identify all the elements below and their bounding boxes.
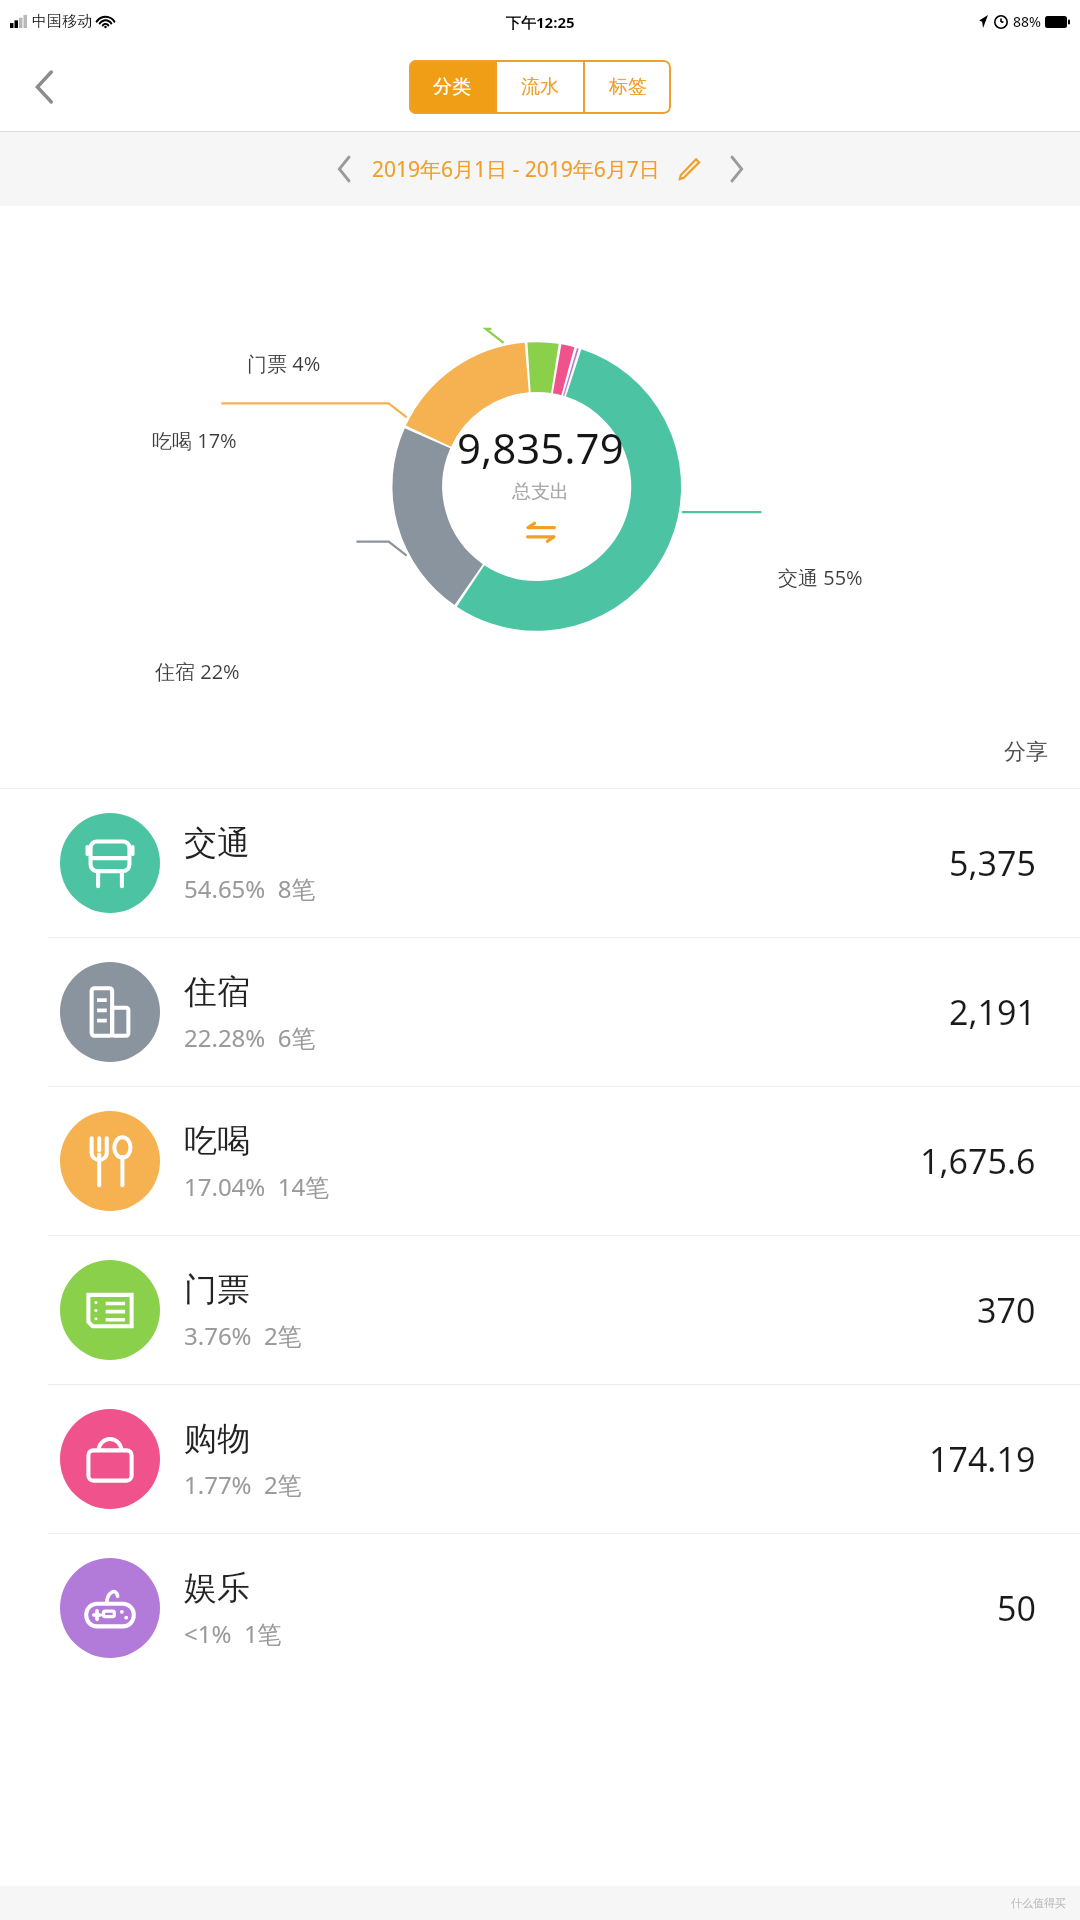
staticText: 住宿 22% xyxy=(155,658,240,685)
staticText: 吃喝 xyxy=(184,1120,250,1162)
button[interactable]: 门票 xyxy=(0,1236,1080,1384)
staticText: 住宿 xyxy=(184,971,250,1013)
staticText: 标签 xyxy=(609,75,647,99)
staticText: 中国移动 xyxy=(32,12,92,31)
staticText: 分类 xyxy=(433,75,471,99)
staticText: 50 xyxy=(997,1585,1036,1631)
button[interactable]: 娱乐 xyxy=(0,1534,1080,1682)
staticText: 交通 55% xyxy=(778,564,863,591)
staticText: 5,375 xyxy=(949,840,1036,886)
staticText: 2019年6月1日 - 2019年6月7日 xyxy=(372,155,660,184)
staticText: 娱乐 xyxy=(184,1567,250,1609)
button[interactable]: 流水 xyxy=(497,60,583,114)
staticText: 54.65% 8笔 xyxy=(184,872,316,905)
button[interactable]: 交通 xyxy=(0,789,1080,937)
staticText: 174.19 xyxy=(929,1436,1036,1482)
staticText: 22.28% 6笔 xyxy=(184,1021,316,1054)
button[interactable]: 分类 xyxy=(409,60,495,114)
staticText: 分享 xyxy=(1004,738,1048,766)
staticText: 总支出 xyxy=(512,480,569,504)
staticText: 88% xyxy=(1013,12,1041,31)
button[interactable]: Next period xyxy=(714,147,758,191)
staticText: 1,675.6 xyxy=(920,1138,1036,1184)
button[interactable]: 分享 xyxy=(1004,738,1048,766)
staticText: 门票 xyxy=(184,1269,250,1311)
button[interactable]: Back xyxy=(22,65,66,109)
button[interactable]: Edit date range xyxy=(672,152,706,186)
button[interactable]: Previous period xyxy=(322,147,366,191)
staticText: 购物 xyxy=(184,1418,250,1460)
staticText: 什么值得买 xyxy=(1011,1896,1066,1910)
staticText: 3.76% 2笔 xyxy=(184,1319,302,1352)
staticText: 下午12:25 xyxy=(506,12,575,32)
button[interactable]: 标签 xyxy=(585,60,671,114)
staticText: 交通 xyxy=(184,822,250,864)
button[interactable]: 购物 xyxy=(0,1385,1080,1533)
button[interactable]: 吃喝 xyxy=(0,1087,1080,1235)
staticText: 9,835.79 xyxy=(457,419,624,476)
button[interactable]: Switch income expense xyxy=(521,512,561,552)
button[interactable]: 住宿 xyxy=(0,938,1080,1086)
staticText: 17.04% 14笔 xyxy=(184,1170,330,1203)
staticText: <1% 1笔 xyxy=(184,1617,282,1650)
staticText: 流水 xyxy=(521,75,559,99)
staticText: 370 xyxy=(977,1287,1036,1333)
staticText: 门票 4% xyxy=(247,350,321,377)
staticText: 2,191 xyxy=(949,989,1036,1035)
staticText: 1.77% 2笔 xyxy=(184,1468,302,1501)
staticText: 吃喝 17% xyxy=(152,427,237,454)
